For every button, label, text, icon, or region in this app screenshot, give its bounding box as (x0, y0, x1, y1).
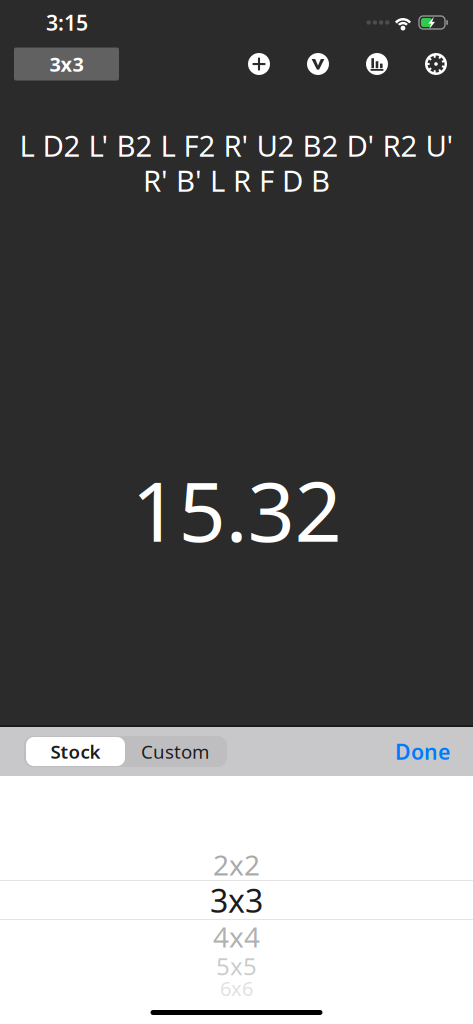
button[interactable]: 4x4 (0, 776, 473, 1024)
button[interactable]: 5x5 (0, 776, 473, 1024)
button[interactable]: Done (395, 737, 473, 766)
staticText: Custom (141, 739, 209, 764)
staticText: 3x3 (210, 879, 263, 921)
button[interactable]: Stock (26, 737, 125, 766)
staticText: R' B' L R F D B (143, 161, 330, 200)
staticText: 2x2 (213, 846, 260, 883)
button[interactable]: Settings (423, 51, 449, 77)
button[interactable]: 6x6 (0, 776, 473, 1024)
staticText: 4x4 (213, 918, 260, 955)
staticText: 3:15 (46, 8, 88, 37)
staticText: 6x6 (220, 975, 253, 1002)
staticText: 15.32 (131, 455, 341, 565)
button[interactable]: 3x3 (0, 776, 473, 1024)
button[interactable]: New time (246, 51, 272, 77)
button[interactable]: Statistics (364, 51, 390, 77)
staticText: 3x3 (49, 51, 83, 77)
staticText: Stock (50, 739, 100, 764)
staticText: Done (395, 737, 450, 766)
button[interactable]: Inspection (305, 51, 331, 77)
staticText: 5x5 (216, 950, 257, 982)
button[interactable]: Custom (125, 737, 225, 766)
button[interactable]: 3x3 (14, 47, 119, 80)
button[interactable]: 2x2 (0, 776, 473, 1024)
staticText: L D2 L' B2 L F2 R' U2 B2 D' R2 U' (19, 126, 453, 165)
